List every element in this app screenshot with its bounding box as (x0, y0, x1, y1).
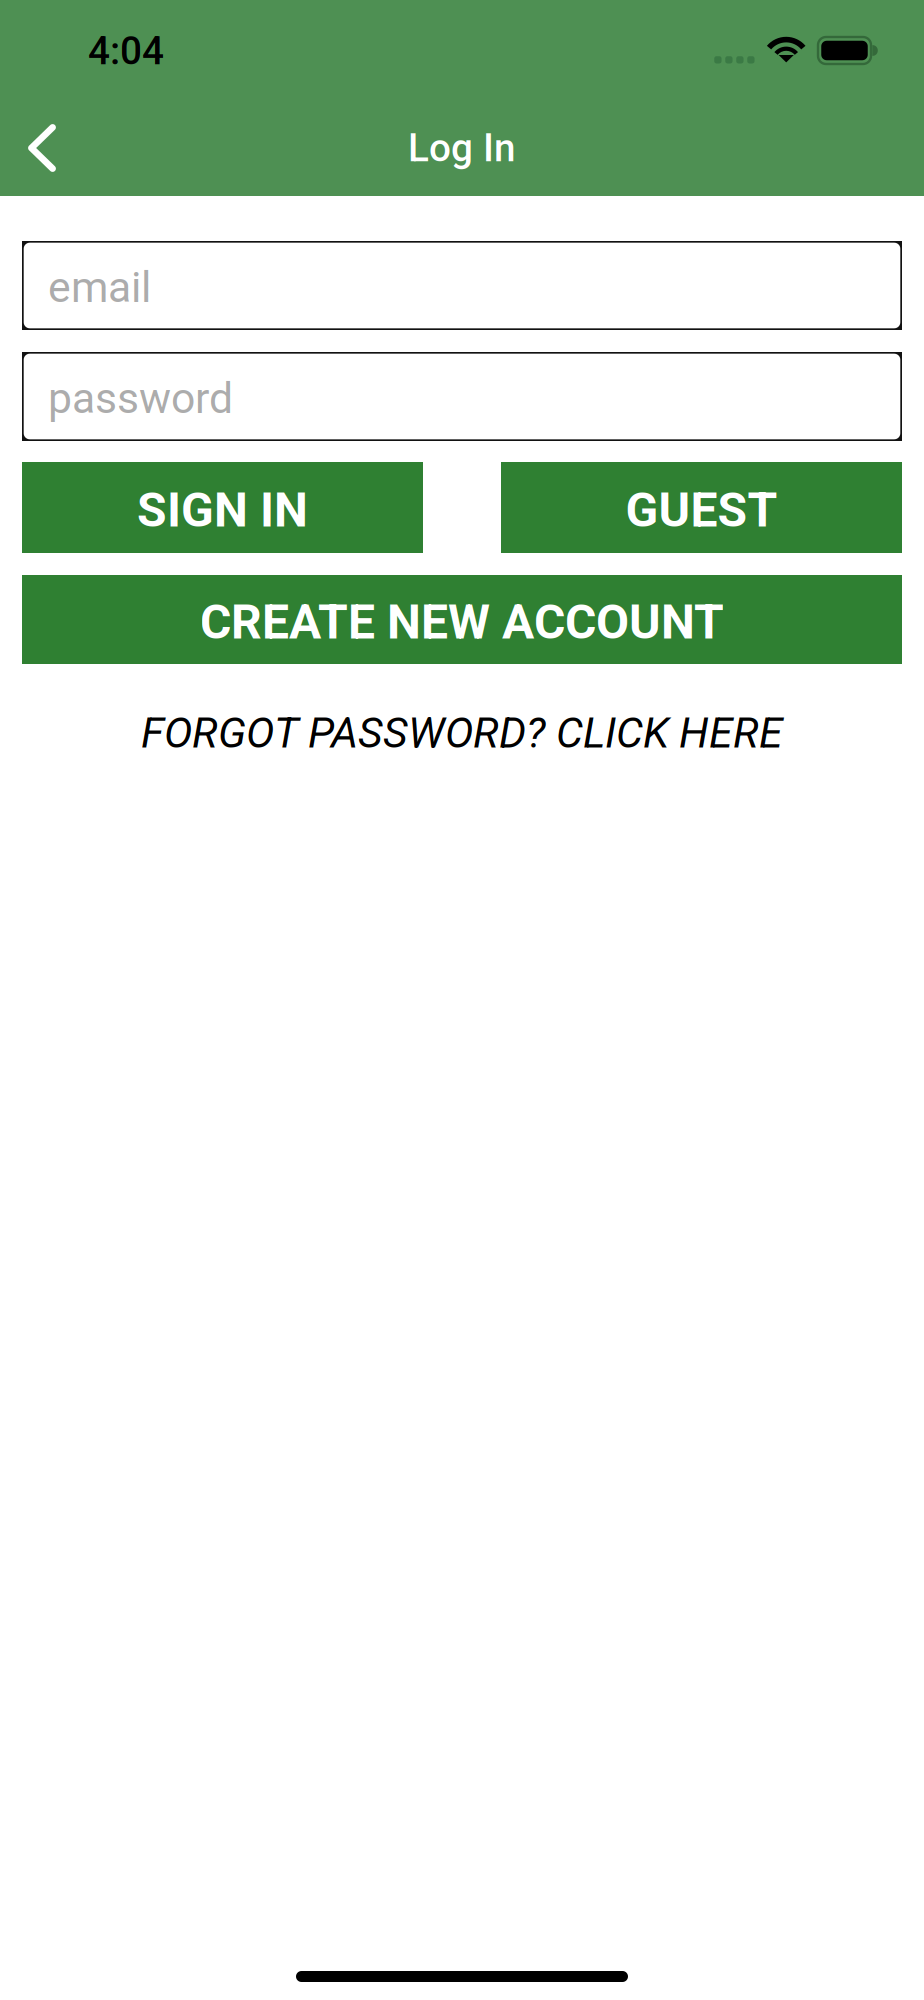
staticText: GUEST (625, 482, 777, 538)
button[interactable]: GUEST (501, 462, 902, 553)
staticText: SIGN IN (137, 482, 308, 538)
button[interactable]: Back (0, 100, 92, 196)
button[interactable]: SIGN IN (22, 462, 423, 553)
staticText: Log In (408, 125, 516, 171)
staticText: FORGOT PASSWORD? CLICK HERE (141, 708, 783, 758)
staticText: CREATE NEW ACCOUNT (200, 594, 724, 650)
button[interactable]: CREATE NEW ACCOUNT (22, 575, 902, 664)
staticText: password (48, 373, 233, 423)
button[interactable]: FORGOT PASSWORD? CLICK HERE (22, 708, 902, 758)
staticText: 4:04 (88, 28, 164, 74)
staticText: email (48, 262, 151, 312)
